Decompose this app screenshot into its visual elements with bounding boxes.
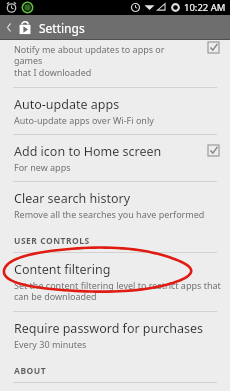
staticText: 10:22 AM xyxy=(184,1,226,14)
staticText: Auto-update apps over Wi-Fi only xyxy=(14,114,154,126)
other: Checkbox, checked xyxy=(207,144,220,157)
staticText: Require password for purchases xyxy=(14,320,203,337)
staticText: Notify me about updates to apps or games… xyxy=(14,43,190,79)
staticText: Auto-update apps xyxy=(14,96,120,113)
button[interactable]: Auto-update apps xyxy=(0,88,230,134)
button[interactable]: Notify me about updates to apps or games… xyxy=(0,40,230,87)
button[interactable]: Add icon to Home screen xyxy=(0,135,230,181)
button[interactable]: Content filtering xyxy=(0,253,230,311)
staticText: Clear search history xyxy=(14,190,131,207)
staticText: Every 30 minutes xyxy=(14,338,87,350)
staticText: Content filtering xyxy=(14,261,111,278)
staticText: Set the content filtering level to restr… xyxy=(14,279,221,303)
other: Checkbox, checked xyxy=(207,41,220,54)
staticText: USER CONTROLS xyxy=(14,235,90,247)
staticText: ABOUT xyxy=(14,365,47,377)
button[interactable]: Clear search history xyxy=(0,182,230,228)
button[interactable]: Require password for purchases xyxy=(0,312,230,358)
staticText: Add icon to Home screen xyxy=(14,143,162,160)
staticText: For new apps xyxy=(14,161,71,173)
staticText: Remove all the searches you have perform… xyxy=(14,208,205,220)
staticText: Settings xyxy=(39,20,85,36)
button[interactable]: Navigate up xyxy=(0,15,230,40)
